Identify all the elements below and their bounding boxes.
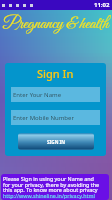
- staticText: Pregnancy & health: [3, 14, 109, 35]
- button[interactable]: Enter Your Name: [11, 87, 100, 102]
- staticText: Please Sign in using your Name and Mobil…: [3, 175, 109, 182]
- staticText: for your privacy, there by avoiding the …: [3, 181, 109, 188]
- staticText: 11:02: [94, 1, 110, 9]
- button[interactable]: Enter Mobile Number: [11, 110, 100, 125]
- button[interactable]: SIGN IN: [18, 133, 94, 150]
- staticText: Enter Your Name: [13, 91, 62, 99]
- button[interactable]: http://www.shineline.in/privacy.html: [3, 192, 95, 199]
- staticText: this app. To know more about privacy pol…: [3, 186, 109, 193]
- staticText: Enter Mobile Number: [13, 114, 74, 122]
- staticText: Sign In: [37, 66, 74, 81]
- staticText: SIGN IN: [47, 139, 66, 145]
